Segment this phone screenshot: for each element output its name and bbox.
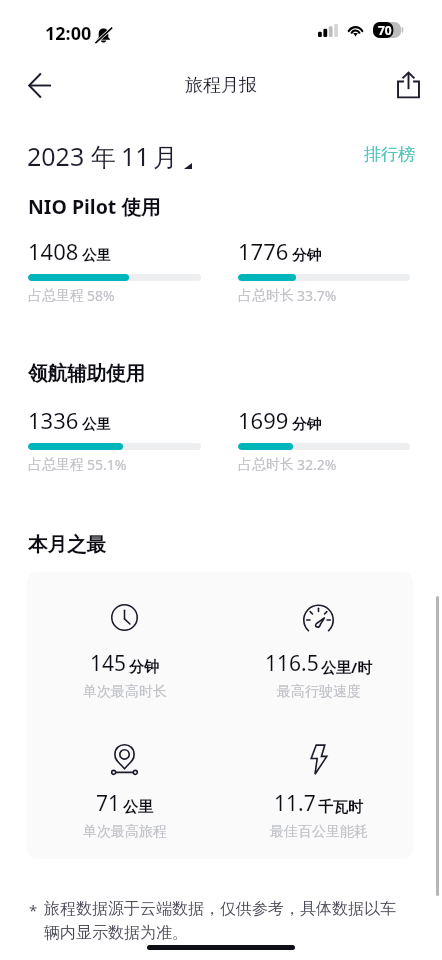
staticText: 58% [87,286,115,305]
staticText: 领航辅助使用 [28,361,145,386]
staticText: 占总里程 [28,456,84,474]
button[interactable]: Share [385,62,431,108]
staticText: 单次最高时长 [83,683,167,701]
button[interactable]: 2023 [27,139,192,173]
button[interactable]: Back [16,62,62,108]
staticText: 公里 [82,415,111,433]
staticText: 公里 [82,246,111,264]
staticText: 70 [378,22,392,38]
staticText: 11.7 [274,789,316,818]
staticText: 本月之最 [28,532,106,557]
staticText: 单次最高旅程 [83,823,167,841]
staticText: * [29,900,38,920]
staticText: 最高行驶速度 [277,683,361,701]
staticText: 分钟 [292,415,321,433]
staticText: 公里 [123,798,153,817]
staticText: 1336 [28,405,79,435]
staticText: 1699 [238,405,289,435]
staticText: 116.5 [265,649,319,678]
button[interactable]: 排行榜 [364,144,415,165]
staticText: 分钟 [129,658,159,677]
staticText: 33.7% [297,286,337,305]
staticText: 排行榜 [364,144,415,165]
staticText: 占总里程 [28,287,84,305]
staticText: 旅程数据源于云端数据，仅供参考，具体数据以车辆内显示数据为准。 [44,899,404,942]
staticText: 占总时长 [238,287,294,305]
staticText: 2023 [27,139,85,173]
staticText: 最佳百公里能耗 [270,823,368,841]
staticText: 145 [90,649,127,678]
staticText: 月 [153,142,178,173]
staticText: 1776 [238,236,289,266]
staticText: 1408 [28,236,79,266]
staticText: 55.1% [87,455,127,474]
staticText: 占总时长 [238,456,294,474]
staticText: NIO Pilot 使用 [28,193,161,220]
staticText: 11 [121,139,150,173]
staticText: 年 [91,142,116,173]
staticText: 32.2% [297,455,337,474]
staticText: 公里/时 [321,657,373,677]
staticText: 71 [96,789,121,818]
staticText: 12:00 [45,21,92,46]
staticText: 分钟 [292,246,321,264]
staticText: 旅程月报 [185,74,257,97]
staticText: 千瓦时 [318,798,363,817]
